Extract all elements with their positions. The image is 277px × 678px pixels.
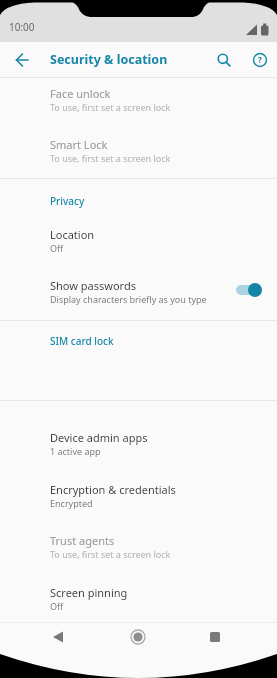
button[interactable]: Device admin apps <box>0 426 277 470</box>
staticText: SIM card lock <box>50 334 114 348</box>
staticText: To use, first set a screen lock <box>50 152 171 164</box>
button[interactable]: Trust agents <box>0 529 277 573</box>
button[interactable]: Encryption & credentials <box>0 478 277 522</box>
staticText: Face unlock <box>50 86 111 101</box>
staticText: Encryption & credentials <box>50 482 176 497</box>
staticText: 1 active app <box>50 445 101 457</box>
staticText: To use, first set a screen lock <box>50 548 171 560</box>
staticText: Security & location <box>50 51 168 68</box>
button[interactable] <box>124 623 152 651</box>
button[interactable]: Face unlock <box>0 82 277 126</box>
staticText: To use, first set a screen lock <box>50 101 171 113</box>
button[interactable]: Location <box>0 223 277 267</box>
staticText: Off <box>50 242 64 254</box>
staticText: Privacy <box>50 194 85 208</box>
staticText: Display characters briefly as you type <box>50 293 207 305</box>
button[interactable] <box>44 623 72 651</box>
staticText: Show passwords <box>50 278 136 293</box>
button[interactable] <box>210 46 237 73</box>
staticText: Smart Lock <box>50 137 108 152</box>
staticText: Device admin apps <box>50 430 148 445</box>
button[interactable]: SIM card lock <box>0 327 277 355</box>
button[interactable] <box>201 623 229 651</box>
button[interactable]: Smart Lock <box>0 133 277 177</box>
staticText: Trust agents <box>50 533 115 548</box>
staticText: Encrypted <box>50 497 93 509</box>
staticText: Location <box>50 227 95 242</box>
staticText: 10:00 <box>9 20 35 34</box>
staticText: Screen pinning <box>50 585 128 600</box>
staticText: Off <box>50 600 64 612</box>
button[interactable] <box>8 46 36 74</box>
button[interactable]: Screen pinning <box>0 581 277 625</box>
button[interactable]: ? <box>246 46 273 73</box>
staticText: ? <box>258 54 262 65</box>
button[interactable]: Show passwords <box>0 274 277 318</box>
